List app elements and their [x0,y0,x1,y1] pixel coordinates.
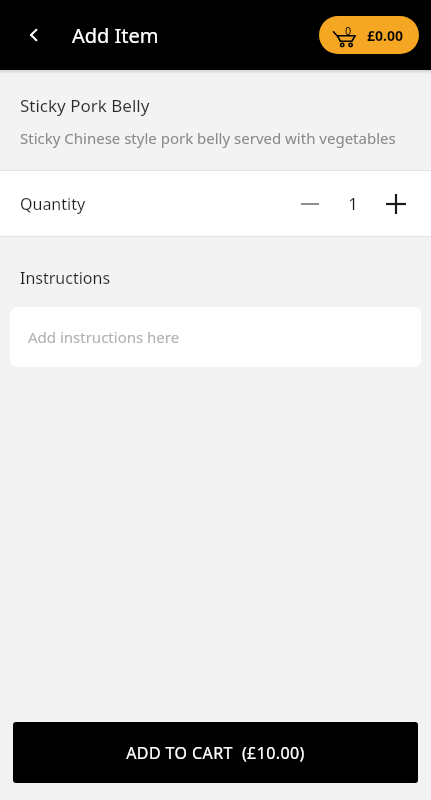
button[interactable]: 0 [319,16,419,54]
staticText: Add Item [72,22,159,49]
button[interactable]: Increase quantity [375,183,417,225]
staticText: 0 [345,23,352,38]
staticText: Sticky Pork Belly [20,94,150,117]
button[interactable]: Back [12,13,56,57]
button[interactable]: ADD TO CART (£10.00) [13,722,418,783]
staticText: Quantity [20,193,86,215]
staticText: Sticky Chinese style pork belly served w… [20,128,396,148]
staticText: 1 [348,192,358,215]
staticText: £0.00 [367,26,403,45]
staticText: ADD TO CART (£10.00) [126,742,305,764]
staticText: Add instructions here [28,327,180,347]
button[interactable]: Decrease quantity [289,183,331,225]
staticText: Instructions [20,267,111,289]
button[interactable]: Add instructions here [10,307,421,367]
